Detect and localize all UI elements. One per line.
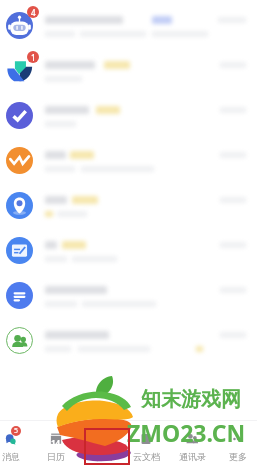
staticText: 消息 xyxy=(2,451,20,462)
staticText: 5 xyxy=(14,426,19,436)
button[interactable]: 更多 xyxy=(215,421,257,465)
button[interactable]: Tasks xyxy=(0,90,257,135)
staticText: 知末游戏网 xyxy=(141,387,241,412)
button[interactable]: Location xyxy=(0,180,257,225)
button[interactable]: Docs xyxy=(0,225,257,270)
staticText: 云文档 xyxy=(133,451,160,462)
button[interactable]: 14 xyxy=(33,421,78,465)
button[interactable]: 云文档 xyxy=(123,421,169,465)
other: Notices xyxy=(6,282,33,309)
button[interactable]: 5 xyxy=(0,421,33,465)
staticText: 工作台 xyxy=(87,451,114,462)
staticText: 更多 xyxy=(229,451,247,462)
staticText: 1 xyxy=(31,52,36,63)
staticText: 通讯录 xyxy=(179,451,206,462)
button[interactable]: Notices xyxy=(0,270,257,315)
button[interactable]: Contacts group xyxy=(0,315,257,360)
other: Lark xyxy=(6,57,33,84)
button[interactable]: Lark xyxy=(0,45,257,90)
staticText: ZMO23.CN xyxy=(127,417,246,448)
other: Tasks xyxy=(6,102,33,129)
button[interactable]: 工作台 xyxy=(78,421,123,465)
staticText: 日历 xyxy=(47,451,65,462)
other: Location xyxy=(6,192,33,219)
other: Robot assistant xyxy=(6,12,33,39)
button[interactable]: Robot assistant xyxy=(0,0,257,45)
other: Docs xyxy=(6,237,33,264)
other: Approvals xyxy=(6,147,33,174)
button[interactable]: 通讯录 xyxy=(169,421,215,465)
other: Contacts group xyxy=(6,327,33,354)
staticText: 14 xyxy=(51,437,61,448)
button[interactable]: Approvals xyxy=(0,135,257,180)
staticText: 4 xyxy=(31,7,36,18)
